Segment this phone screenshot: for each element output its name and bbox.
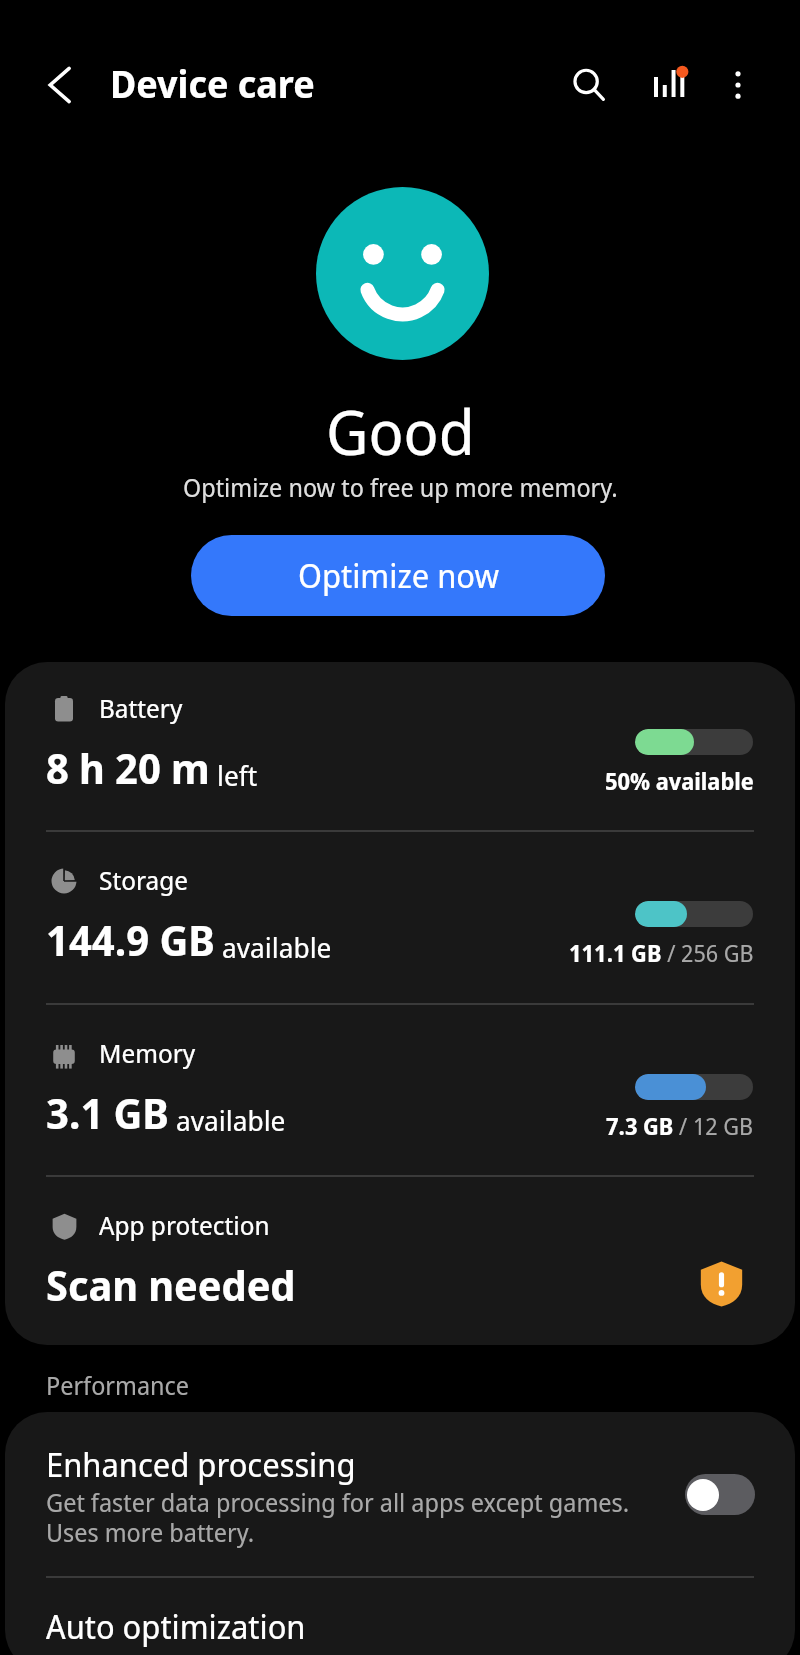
button[interactable]: Optimize now	[191, 535, 605, 616]
button[interactable]: Storage	[5, 834, 795, 1003]
staticText: Battery	[99, 690, 183, 725]
button[interactable]: App protection	[5, 1179, 795, 1345]
button[interactable]: Memory	[5, 1007, 795, 1176]
staticText: 111.1 GB / 256 GB	[569, 937, 754, 968]
staticText: Good	[326, 389, 475, 473]
staticText: available	[176, 1101, 286, 1139]
staticText: Storage	[99, 862, 189, 897]
button[interactable]: Battery	[5, 662, 795, 831]
staticText: Memory	[99, 1035, 196, 1070]
button[interactable]: Usage statistics	[641, 59, 693, 111]
staticText: Optimize now to free up more memory.	[183, 470, 618, 504]
button[interactable]: Search	[563, 59, 615, 111]
staticText: available	[222, 928, 332, 966]
staticText: Device care	[110, 57, 315, 109]
staticText: Scan needed	[46, 1256, 296, 1313]
staticText: 50% available	[605, 765, 754, 796]
staticText: 7.3 GB / 12 GB	[606, 1110, 754, 1141]
staticText: Enhanced processing	[46, 1442, 356, 1487]
button[interactable]: Enhanced processing toggle	[685, 1474, 755, 1515]
staticText: 8 h 20 m	[46, 739, 210, 796]
staticText: Performance	[46, 1368, 190, 1402]
button[interactable]: Auto optimization	[5, 1577, 795, 1655]
staticText: 3.1 GB	[46, 1084, 169, 1141]
staticText: App protection	[99, 1207, 270, 1242]
button[interactable]: Navigate up	[36, 59, 88, 111]
staticText: Get faster data processing for all apps …	[46, 1485, 630, 1549]
button[interactable]: Enhanced processing	[5, 1412, 795, 1576]
staticText: Auto optimization	[46, 1604, 306, 1649]
staticText: 144.9 GB	[46, 911, 215, 968]
staticText: left	[217, 756, 258, 794]
staticText: Optimize now	[298, 553, 499, 598]
button[interactable]: More options	[712, 59, 764, 111]
